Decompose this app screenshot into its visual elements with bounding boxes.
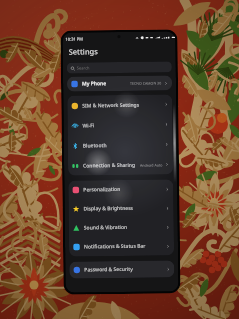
staticText: Display & Brightness — [83, 205, 134, 212]
staticText: 10:31 PM — [65, 36, 84, 42]
staticText: Wi-Fi — [82, 122, 95, 129]
button[interactable]: Personalization — [68, 179, 173, 200]
staticText: Connection & Sharing — [83, 162, 136, 169]
staticText: TECNO CAMON 30 — [130, 80, 162, 86]
staticText: Settings — [69, 46, 99, 57]
button[interactable]: Password & Security — [69, 260, 174, 279]
button[interactable]: Search — [67, 61, 172, 74]
button[interactable]: Display & Brightness — [68, 198, 174, 219]
staticText: SIM & Network Settings — [82, 102, 139, 109]
button[interactable]: Bluetooth — [68, 134, 173, 156]
staticText: Bluetooth — [83, 142, 107, 149]
staticText: Notifications & Status Bar — [84, 243, 146, 250]
button[interactable]: SIM & Network Settings — [67, 94, 172, 116]
staticText: Sound & Vibration — [84, 224, 128, 231]
staticText: Search — [77, 65, 90, 71]
button[interactable]: Notifications & Status Bar — [69, 236, 174, 257]
button[interactable]: Wi-Fi — [67, 114, 173, 136]
button[interactable]: Sound & Vibration — [69, 217, 174, 238]
staticText: Password & Security — [84, 266, 133, 273]
staticText: My Phone — [82, 80, 107, 87]
staticText: Personalization — [83, 186, 120, 193]
staticText: Android Auto — [140, 162, 163, 168]
button[interactable]: My Phone — [67, 75, 172, 92]
button[interactable]: Connection & Sharing — [68, 154, 173, 176]
